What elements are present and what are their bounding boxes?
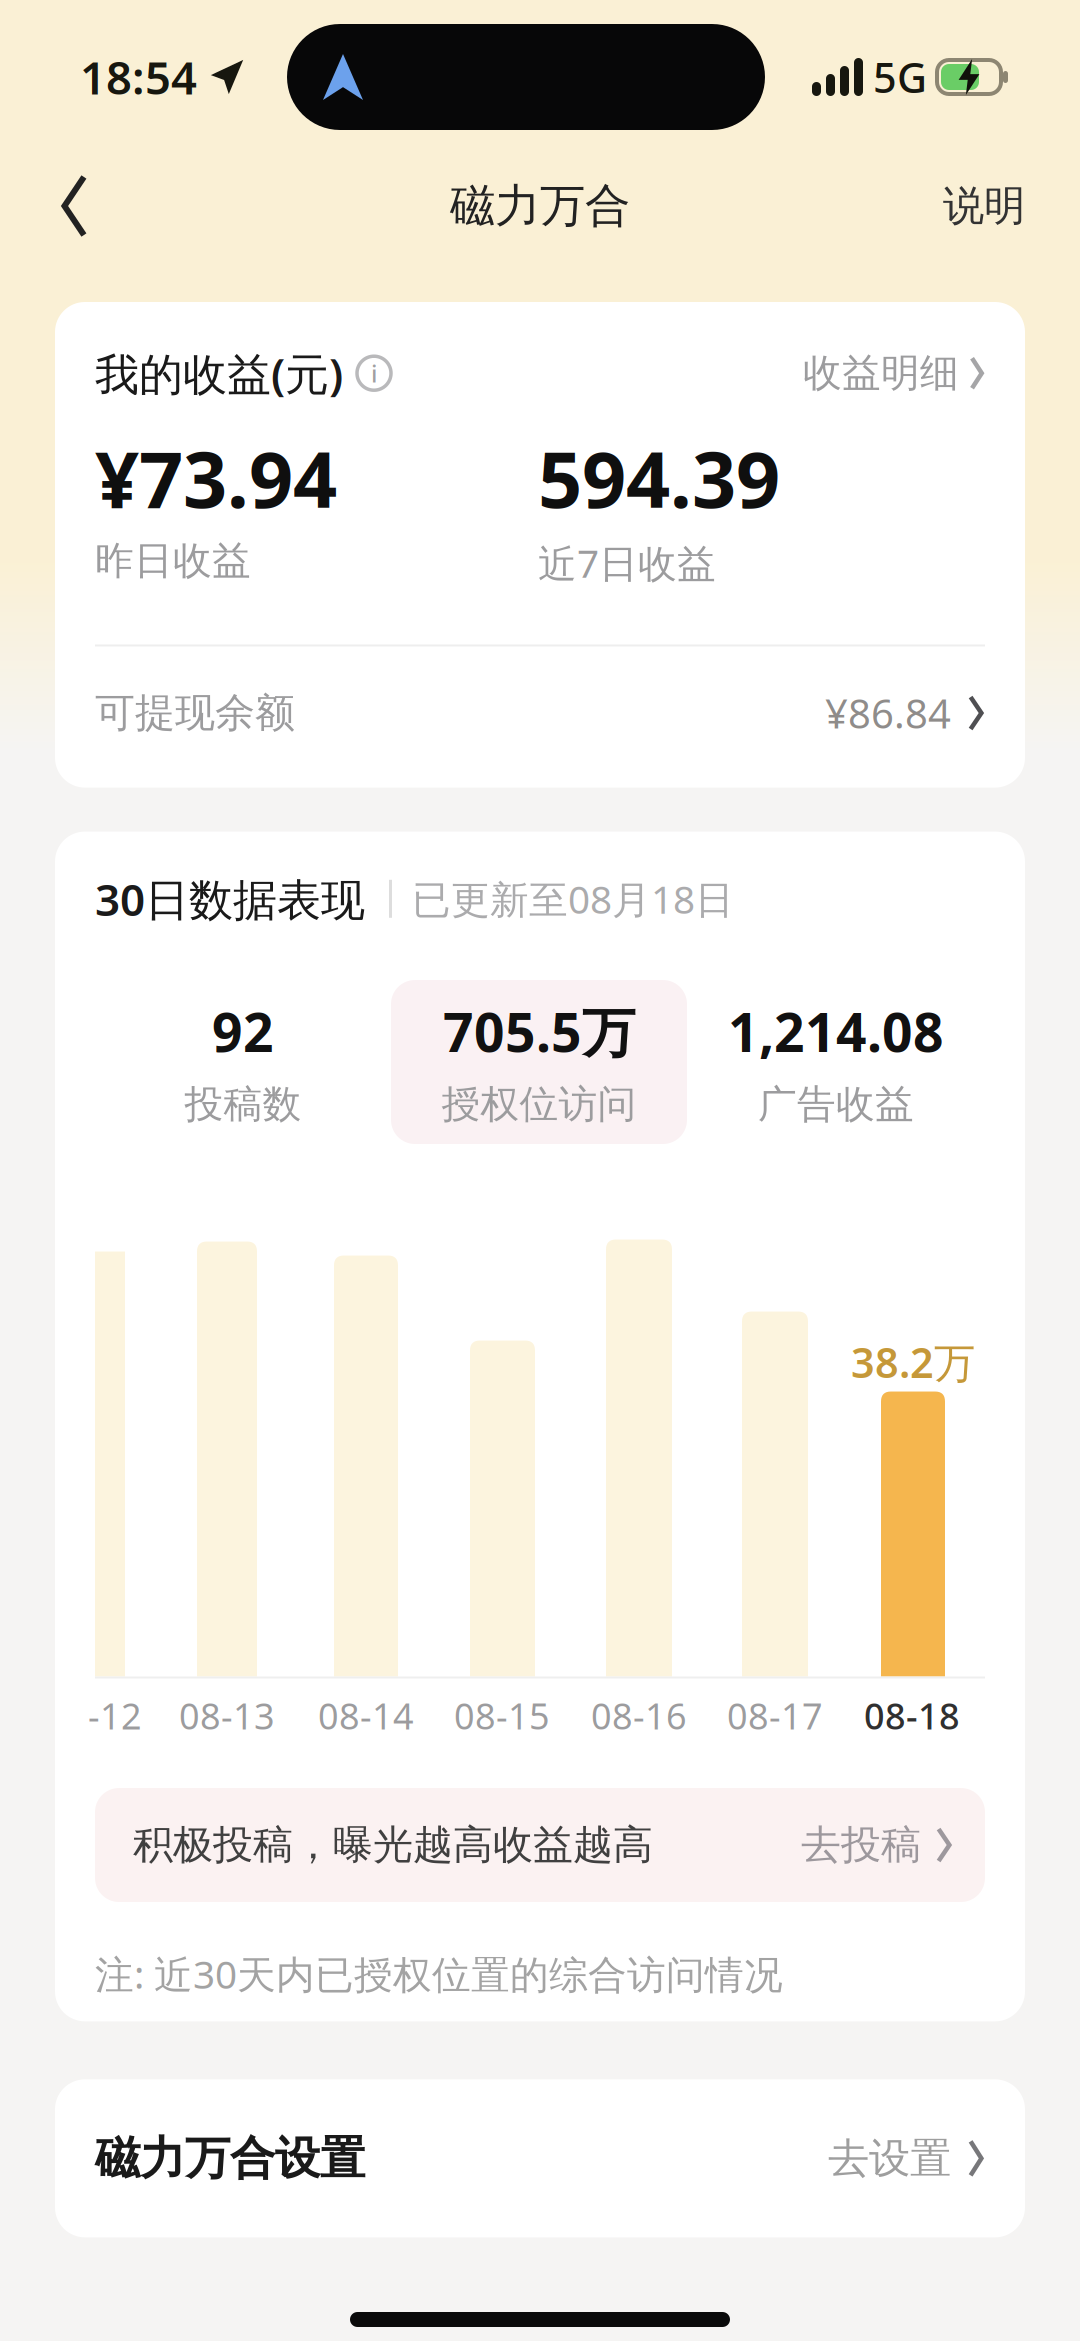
button[interactable]: 说明 xyxy=(943,181,1080,231)
staticText: 磁力万合 xyxy=(450,178,630,234)
button[interactable]: 收益明细 xyxy=(803,349,985,397)
staticText: 08-14 xyxy=(318,1691,414,1739)
staticText: 38.2万 xyxy=(851,1334,975,1389)
staticText: 授权位访问 xyxy=(441,1081,636,1128)
staticText: 去投稿 xyxy=(801,1820,921,1870)
staticText: 昨日收益 xyxy=(95,537,251,585)
staticText: 1,214.08 xyxy=(728,996,944,1067)
staticText: 08-18 xyxy=(864,1691,960,1739)
staticText: 08-13 xyxy=(179,1691,275,1739)
staticText: 积极投稿，曝光越高收益越高 xyxy=(133,1820,653,1870)
staticText: ¥86.84 xyxy=(825,686,951,740)
button[interactable]: 磁力万合设置 xyxy=(55,2079,1025,2237)
staticText: 注: 近30天内已授权位置的综合访问情况 xyxy=(95,1948,783,1999)
staticText: 5G xyxy=(873,50,927,104)
staticText: 投稿数 xyxy=(184,1081,301,1128)
staticText: ¥73.94 xyxy=(95,426,337,529)
button[interactable]: 积极投稿，曝光越高收益越高 xyxy=(95,1788,985,1902)
button[interactable]: 收益说明 xyxy=(343,356,391,390)
staticText: 磁力万合设置 xyxy=(95,2130,365,2186)
staticText: 08-15 xyxy=(454,1691,550,1739)
staticText: 92 xyxy=(212,996,274,1067)
staticText: 说明 xyxy=(943,181,1025,231)
staticText: 705.5万 xyxy=(443,996,635,1067)
staticText: 近7日收益 xyxy=(538,537,716,588)
staticText: 18:54 xyxy=(80,47,197,107)
staticText: 08-16 xyxy=(591,1691,687,1739)
button[interactable]: 可提现余额 xyxy=(95,646,985,788)
staticText: 30日数据表现 xyxy=(95,870,365,928)
staticText: i xyxy=(371,357,377,389)
button[interactable]: 返回 xyxy=(0,177,94,235)
staticText: 594.39 xyxy=(538,426,780,529)
staticText: -12 xyxy=(88,1691,142,1739)
staticText: 08-17 xyxy=(727,1691,823,1739)
staticText: 广告收益 xyxy=(758,1081,914,1128)
staticText: 去设置 xyxy=(828,2133,951,2184)
staticText: 收益明细 xyxy=(803,349,959,397)
staticText: 已更新至08月18日 xyxy=(412,873,734,924)
staticText: 可提现余额 xyxy=(95,688,295,738)
staticText: 我的收益(元) xyxy=(95,344,343,402)
